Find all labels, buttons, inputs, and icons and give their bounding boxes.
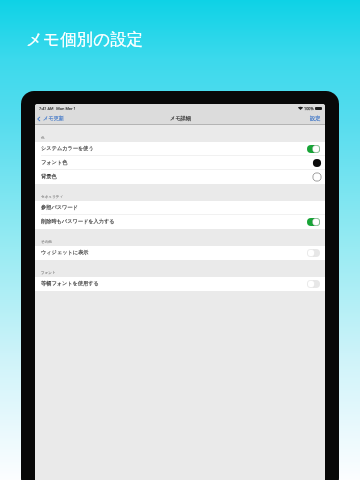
staticText: 色 xyxy=(41,136,45,141)
staticText: 7:41 AM Mon Mar 1 xyxy=(39,106,76,111)
staticText: 設定 xyxy=(310,115,321,122)
staticText: メモ詳細 xyxy=(170,115,191,122)
staticText: 等幅フォントを使用する xyxy=(41,280,99,287)
staticText: ウィジェットに表示 xyxy=(41,249,89,256)
staticText: 削除時もパスワードを入力する xyxy=(41,218,115,225)
staticText: 7:41 AM Mon Mar 1 xyxy=(39,106,76,111)
staticText: ウィジェットに表示 xyxy=(41,249,89,256)
staticText: フォント xyxy=(41,271,56,276)
button[interactable]: システムカラーを使う xyxy=(35,142,325,156)
staticText: システムカラーを使う xyxy=(41,145,94,152)
staticText: 参照パスワード xyxy=(41,204,78,211)
staticText: フォント色 xyxy=(41,159,68,166)
button[interactable]: 参照パスワード xyxy=(35,201,325,215)
button[interactable]: 削除時もパスワードを入力する xyxy=(35,215,325,229)
button[interactable]: 背景色 xyxy=(35,170,325,184)
staticText: メモ更新 xyxy=(43,115,64,122)
staticText: セキュリティ xyxy=(41,195,64,200)
button[interactable]: Background colour xyxy=(312,172,322,182)
other: Back xyxy=(36,116,42,122)
staticText: フォント xyxy=(41,271,56,276)
other: Wi-Fi xyxy=(298,106,303,111)
staticText: 色 xyxy=(41,136,45,141)
staticText: 100% xyxy=(304,106,314,111)
staticText: 背景色 xyxy=(41,173,57,180)
staticText: その他 xyxy=(41,240,52,245)
staticText: 参照パスワード xyxy=(41,204,78,211)
staticText: 100% xyxy=(304,106,314,111)
button[interactable]: フォント色 xyxy=(35,156,325,170)
staticText: メモ更新 xyxy=(43,115,64,122)
button[interactable]: 設定 xyxy=(310,115,321,122)
staticText: 削除時もパスワードを入力する xyxy=(41,218,115,225)
button[interactable]: 等幅フォントを使用する xyxy=(35,277,325,291)
button[interactable]: Switch on xyxy=(307,218,320,226)
staticText: 等幅フォントを使用する xyxy=(41,280,99,287)
staticText: 設定 xyxy=(310,115,321,122)
staticText: メモ詳細 xyxy=(170,115,191,122)
button[interactable]: Font colour xyxy=(312,158,322,168)
button[interactable]: Switch on xyxy=(307,145,320,153)
staticText: フォント色 xyxy=(41,159,68,166)
staticText: セキュリティ xyxy=(41,195,64,200)
button[interactable]: Switch off xyxy=(307,249,320,257)
button[interactable]: Back xyxy=(36,115,64,122)
button[interactable]: ウィジェットに表示 xyxy=(35,246,325,260)
staticText: その他 xyxy=(41,240,52,245)
button[interactable]: Switch off xyxy=(307,280,320,288)
staticText: システムカラーを使う xyxy=(41,145,94,152)
staticText: メモ個別の設定 xyxy=(26,29,144,50)
staticText: 背景色 xyxy=(41,173,57,180)
